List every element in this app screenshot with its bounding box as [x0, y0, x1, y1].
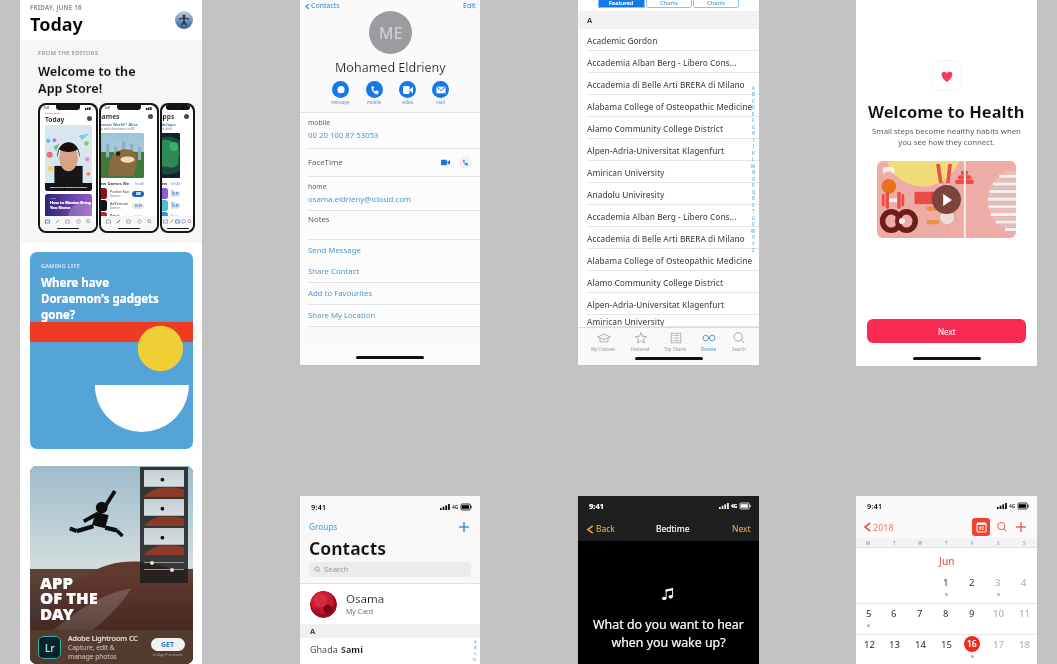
staticText: Pocket Run Pool — [110, 189, 132, 194]
button[interactable]: Top Charts — [663, 331, 688, 352]
button[interactable]: Alabama College of Osteopathic Medicine — [578, 95, 759, 117]
button[interactable]: 8 — [933, 604, 959, 634]
button[interactable]: 17 — [985, 635, 1011, 664]
button[interactable]: GET — [132, 191, 144, 197]
button[interactable]: Featured — [630, 331, 651, 352]
button[interactable]: Browse — [700, 331, 718, 352]
button[interactable]: 18 — [1011, 635, 1037, 664]
button[interactable]: 12 — [856, 635, 881, 664]
button[interactable]: My Courses — [590, 331, 617, 352]
staticText: A — [310, 626, 316, 636]
button[interactable]: Charts — [646, 0, 692, 8]
staticText: Games — [110, 218, 121, 222]
staticText: 11 — [1019, 607, 1030, 620]
button[interactable]: 14 — [907, 635, 933, 664]
button[interactable]: 2 — [959, 573, 985, 603]
button[interactable]: FaceTime audio — [459, 156, 472, 169]
button[interactable]: £0.99 — [171, 191, 180, 197]
staticText: Accademia Alban Berg - Libero Cons... — [587, 211, 737, 222]
staticText: Accademia di Belle Arti BRERA di Milano — [587, 79, 745, 90]
button[interactable]: mail — [432, 81, 449, 105]
button[interactable]: FaceTime video — [439, 156, 452, 169]
staticText: L — [752, 156, 755, 162]
button[interactable]: Academic Gordon — [578, 29, 759, 51]
button[interactable]: Accademia Alban Berg - Libero Cons... — [578, 205, 759, 227]
button[interactable]: message — [331, 81, 350, 105]
button[interactable]: Share Contact — [300, 261, 480, 282]
button[interactable]: video — [399, 81, 416, 105]
button[interactable]: Profile — [175, 11, 193, 29]
button[interactable]: Share My Location — [300, 305, 480, 326]
staticText: 14 — [915, 638, 926, 651]
button[interactable]: Back — [586, 523, 615, 535]
button[interactable]: Featured — [598, 0, 645, 8]
button[interactable]: Search — [995, 520, 1009, 534]
staticText: Back — [596, 523, 615, 535]
staticText: 9:41 — [589, 501, 604, 511]
staticText: Anadolu Univiresity — [587, 189, 665, 200]
button[interactable]: £0.99 — [132, 203, 144, 209]
button[interactable]: Contacts — [304, 1, 340, 11]
button[interactable]: Search — [731, 331, 747, 352]
button[interactable]: Add contact — [457, 520, 471, 534]
button[interactable]: GAMING LIFE — [30, 252, 193, 449]
button[interactable]: Accademia Alban Berg - Libero Cons... — [578, 51, 759, 73]
button[interactable]: GET — [151, 638, 185, 651]
button[interactable]: FaceTime — [300, 149, 480, 176]
button[interactable]: Amirican University — [578, 315, 759, 327]
button[interactable]: 9 — [959, 604, 985, 634]
button[interactable]: 3 — [985, 573, 1011, 603]
button[interactable]: 4 — [1011, 573, 1037, 603]
staticText: Alpen-Adria-Universitat Klagenfurt — [587, 145, 725, 156]
button[interactable]: APP OF THE DAY — [30, 466, 193, 664]
button[interactable]: 1 — [933, 573, 959, 603]
staticText: 9:41 — [867, 501, 882, 511]
button[interactable]: mobile — [300, 113, 480, 148]
button[interactable]: Send Message — [300, 240, 480, 261]
button[interactable]: Accademia di Belle Arti BRERA di Milano — [578, 73, 759, 95]
button[interactable]: Groups — [309, 521, 338, 532]
button[interactable]: Alamo Community College District — [578, 271, 759, 293]
button[interactable]: 6 — [881, 604, 907, 634]
staticText: X — [752, 234, 755, 240]
button[interactable]: 13 — [881, 635, 907, 664]
button[interactable]: Next — [867, 319, 1026, 343]
button[interactable]: home — [300, 177, 480, 210]
button[interactable]: 7 — [907, 604, 933, 634]
button[interactable]: Today — [972, 518, 990, 536]
button[interactable]: Accademia di Belle Arti BRERA di Milano — [578, 227, 759, 249]
button[interactable]: Next — [732, 523, 751, 535]
staticText: Next — [938, 326, 956, 337]
staticText: App Store! — [38, 80, 103, 97]
button[interactable]: Alabama College of Osteopathic Medicine — [578, 249, 759, 271]
button[interactable]: 2018 — [863, 521, 894, 533]
button[interactable]: £0.99 — [171, 203, 180, 209]
button[interactable]: mobile — [366, 81, 383, 105]
staticText: mobile — [308, 118, 330, 127]
staticText: How to Master Bring — [50, 200, 92, 205]
button[interactable]: 16 — [959, 635, 985, 664]
button[interactable]: Osama — [300, 584, 480, 624]
staticText: New Apps We Love — [162, 181, 171, 187]
staticText: 4G — [731, 503, 738, 510]
button[interactable]: 11 — [1011, 604, 1037, 634]
button[interactable]: 5 — [856, 604, 881, 634]
button[interactable]: Amirican University — [578, 161, 759, 183]
button[interactable]: £0.99 — [171, 215, 180, 221]
button[interactable]: Add event — [1014, 520, 1028, 534]
button[interactable]: 15 — [933, 635, 959, 664]
button[interactable]: Alpen-Adria-Universitat Klagenfurt — [578, 293, 759, 315]
button[interactable]: Anadolu Univiresity — [578, 183, 759, 205]
button[interactable]: 10 — [985, 604, 1011, 634]
button[interactable]: Edit — [463, 1, 476, 11]
button[interactable]: Charts — [693, 0, 739, 8]
button[interactable]: Alpen-Adria-Universitat Klagenfurt — [578, 139, 759, 161]
button[interactable]: Search — [309, 562, 471, 577]
button[interactable]: Add to Favourites — [300, 283, 480, 304]
button[interactable]: £0.99 — [132, 215, 144, 221]
button[interactable]: Alamo Community College District — [578, 117, 759, 139]
button[interactable]: Play video — [877, 161, 1016, 238]
